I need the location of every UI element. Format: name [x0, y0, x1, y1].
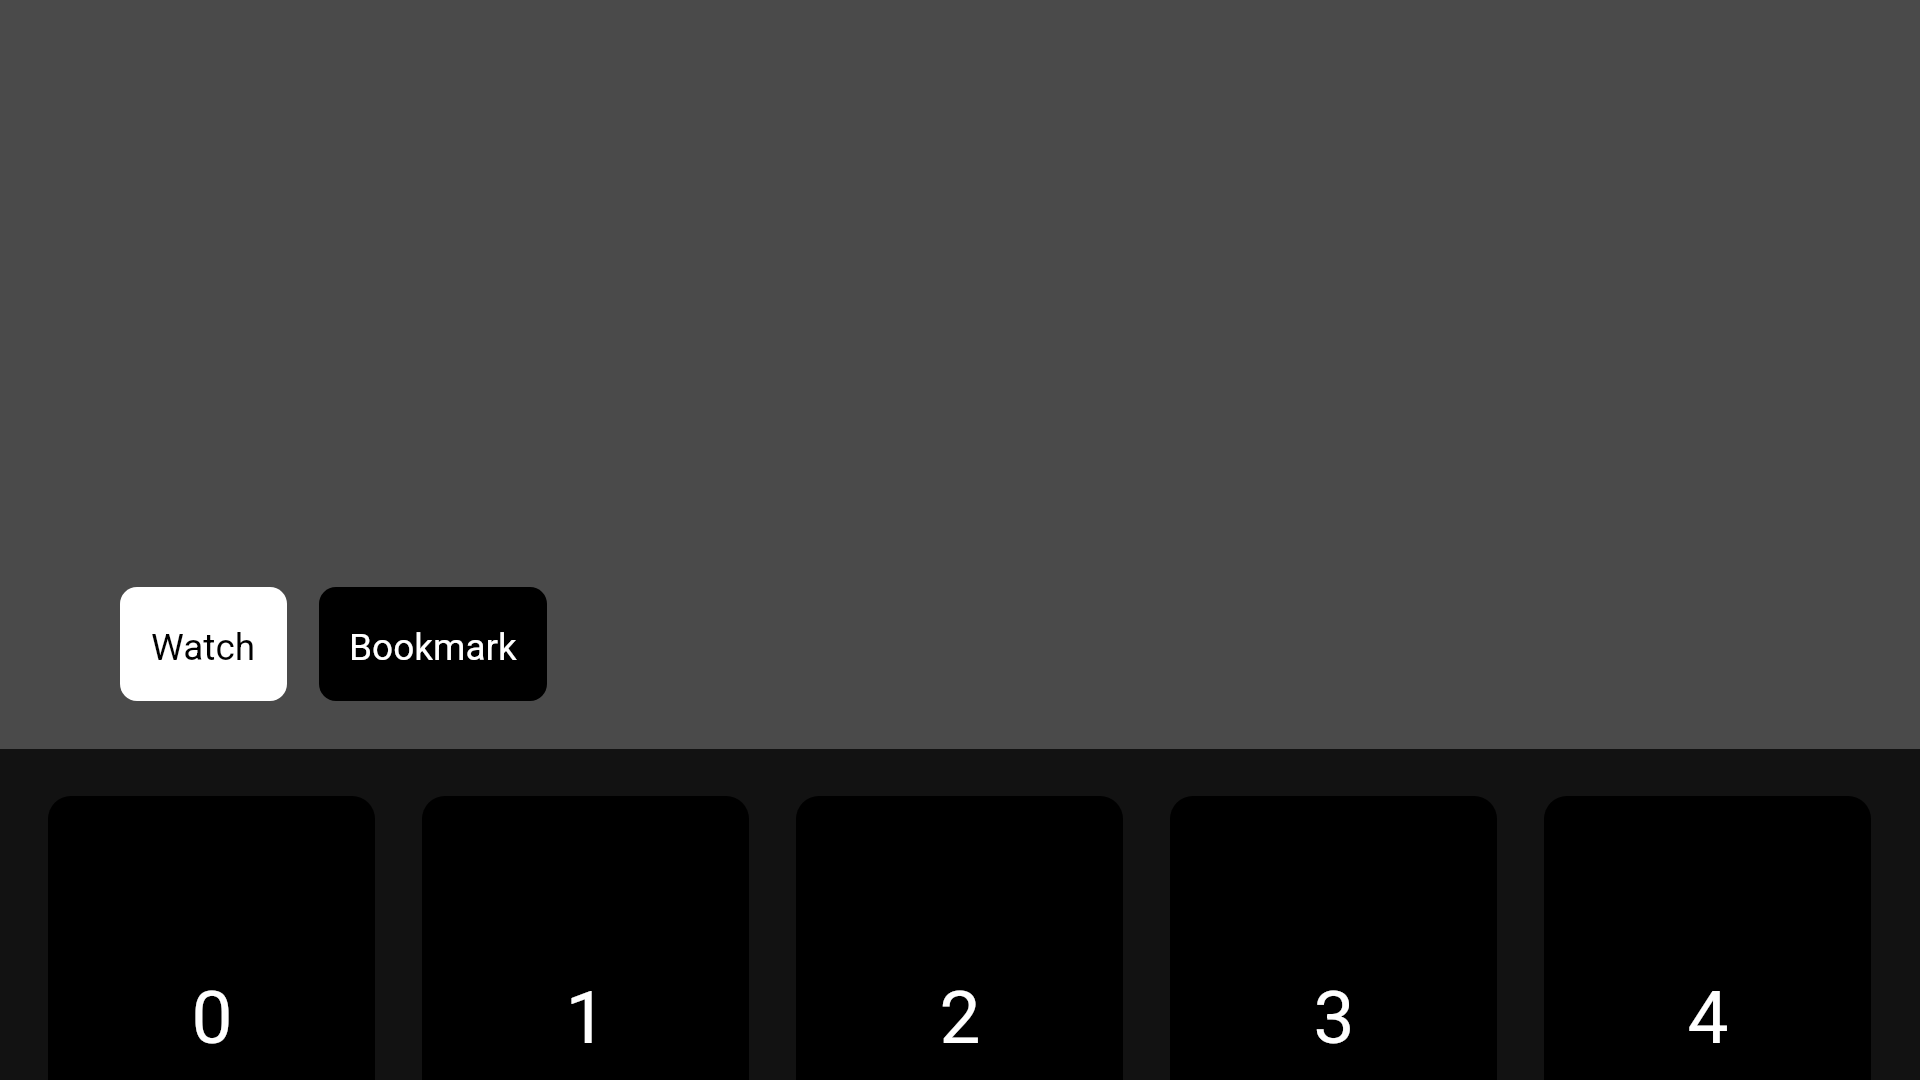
button[interactable]: Item 4 — [1544, 796, 1871, 1080]
staticText: 4 — [1687, 975, 1729, 1061]
staticText: 1 — [565, 975, 607, 1061]
button[interactable]: Watch — [120, 587, 287, 701]
staticText: Bookmark — [349, 626, 517, 669]
button[interactable]: Item 0 — [48, 796, 375, 1080]
button[interactable]: Item 1 — [422, 796, 749, 1080]
staticText: Watch — [151, 626, 256, 669]
button[interactable]: Bookmark — [319, 587, 547, 701]
button[interactable]: Item 2 — [796, 796, 1123, 1080]
staticText: 3 — [1313, 975, 1355, 1061]
staticText: 0 — [191, 975, 233, 1061]
staticText: 2 — [939, 975, 981, 1061]
button[interactable]: Item 3 — [1170, 796, 1497, 1080]
